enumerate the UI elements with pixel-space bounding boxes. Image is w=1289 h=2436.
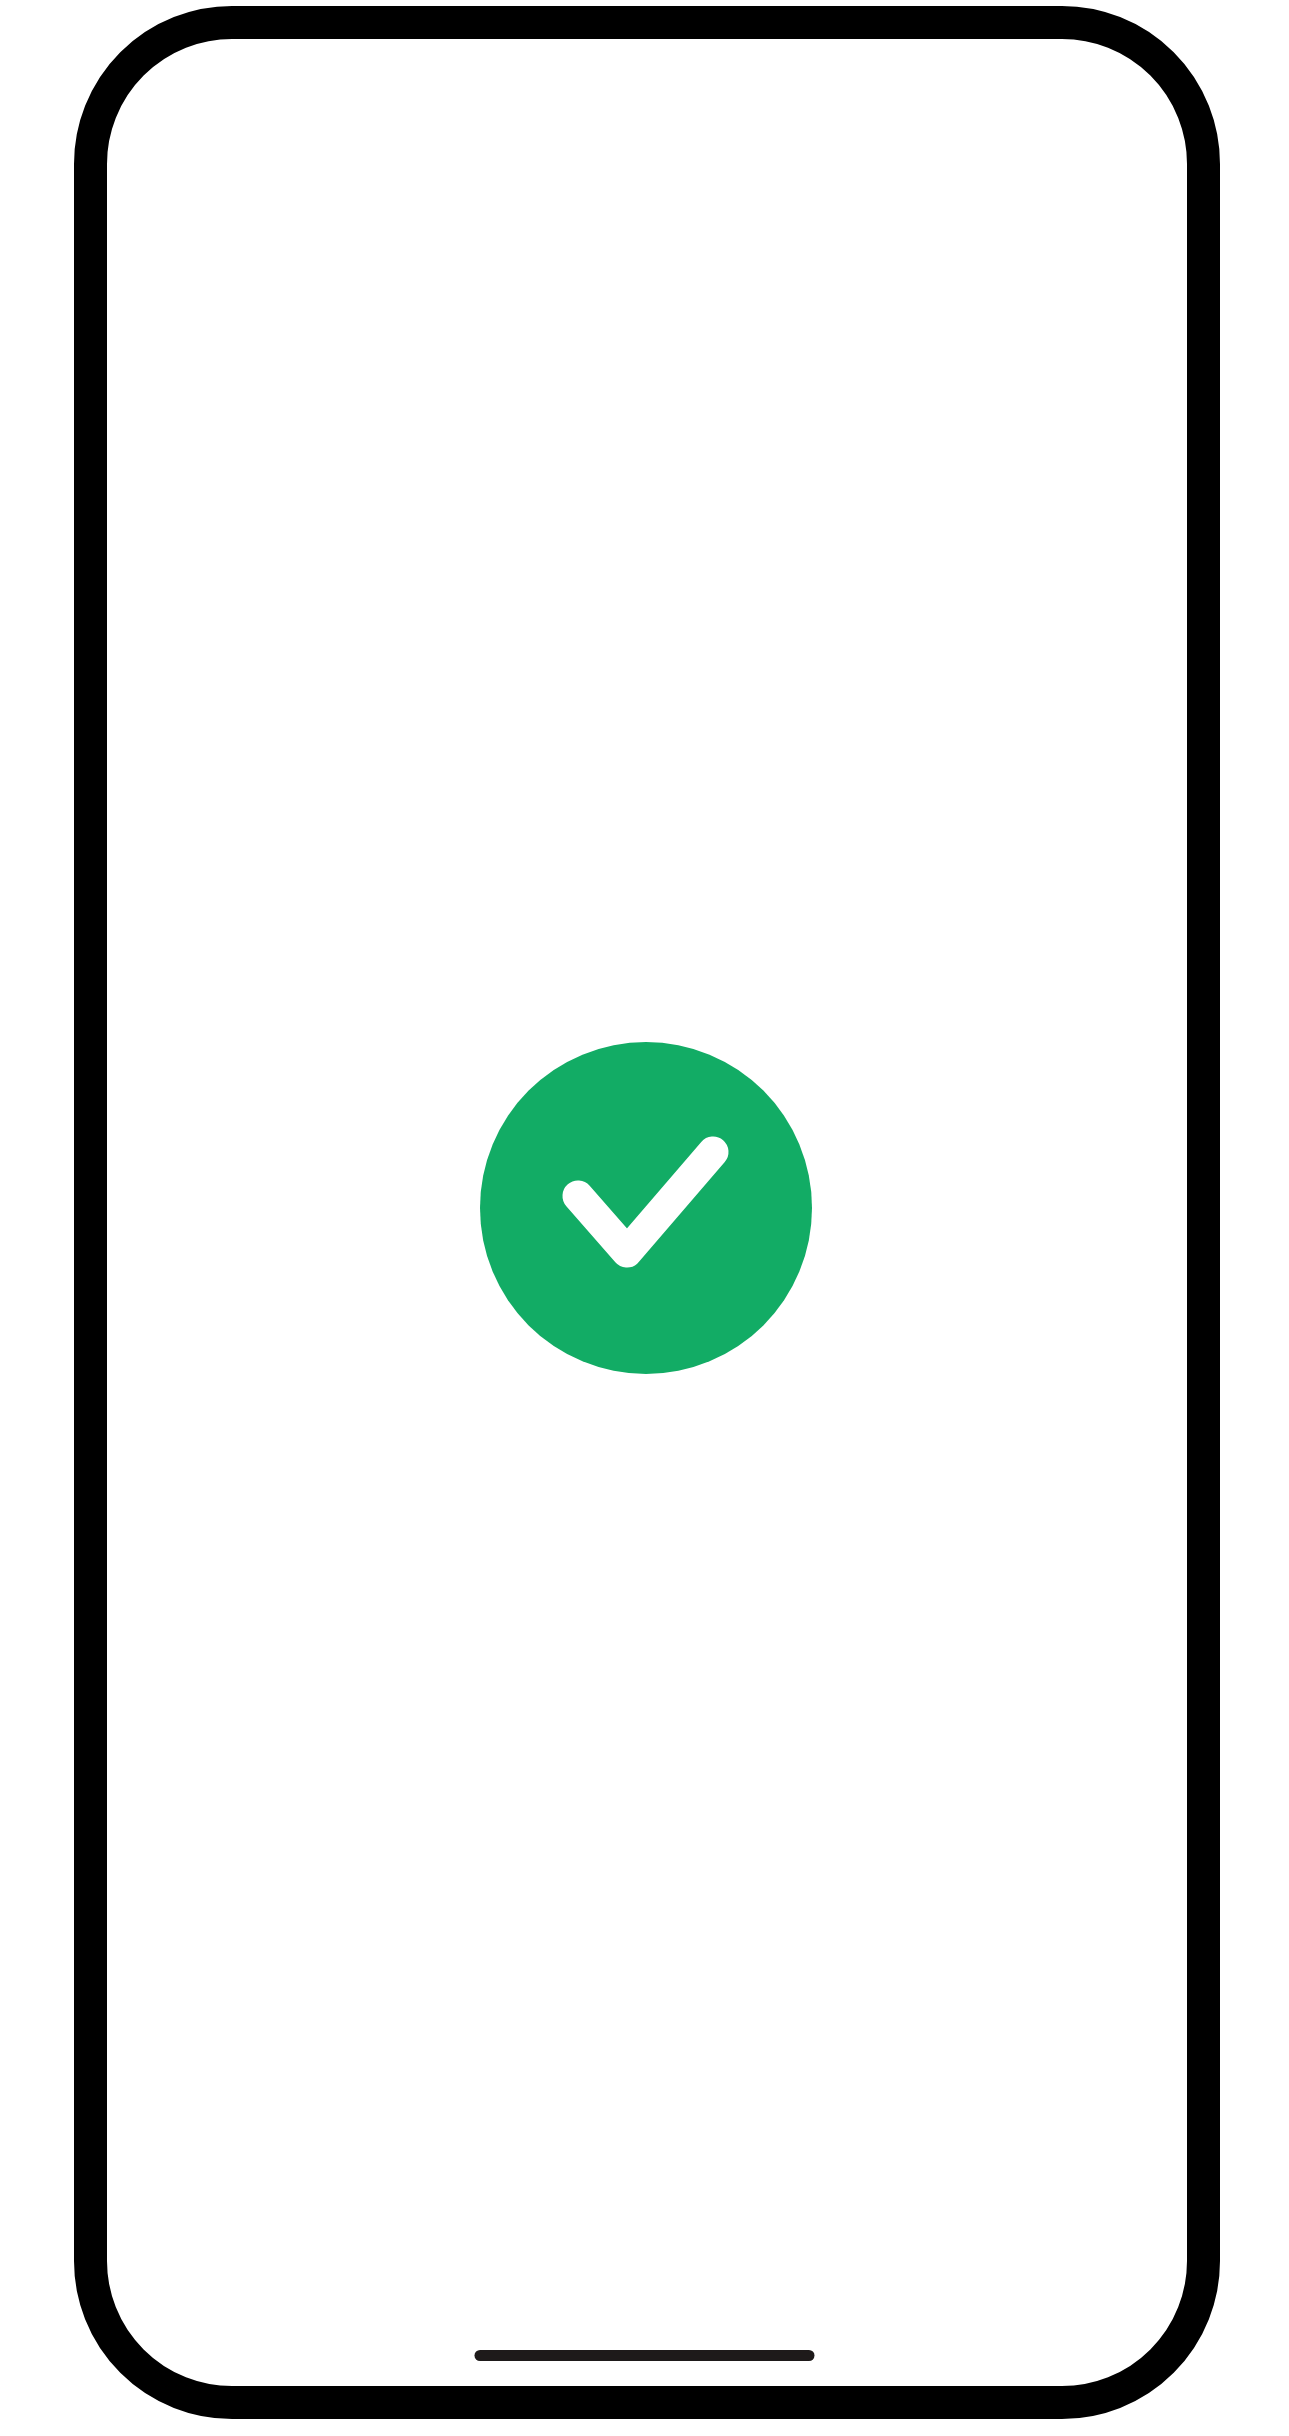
button[interactable]: Success [0, 0, 1289, 2436]
